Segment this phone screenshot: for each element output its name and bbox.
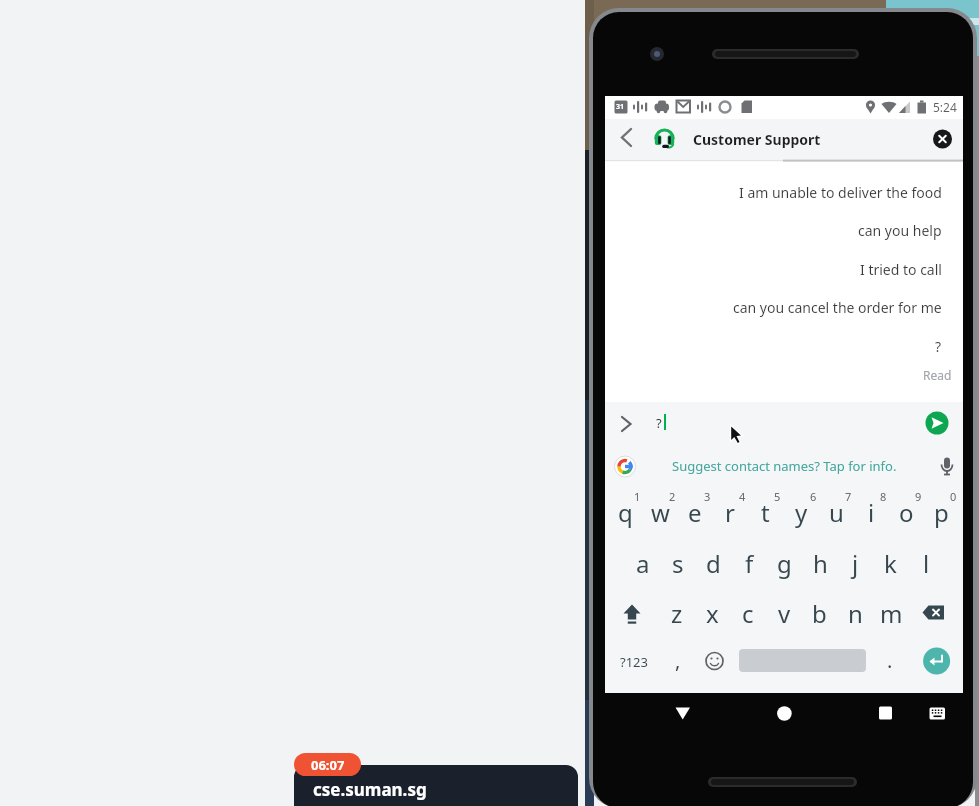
button[interactable]: l xyxy=(909,541,943,585)
staticText: 06:07 xyxy=(311,756,345,774)
staticText: 8 xyxy=(880,489,887,503)
staticText: w xyxy=(651,496,670,529)
staticText: f xyxy=(745,547,754,580)
button[interactable]: n xyxy=(838,591,872,635)
staticText: t xyxy=(761,496,770,529)
button[interactable]: j xyxy=(838,541,872,585)
staticText: I tried to call xyxy=(860,260,942,279)
button[interactable] xyxy=(923,702,951,726)
button[interactable]: h xyxy=(803,541,837,585)
staticText: 5:24 xyxy=(933,99,957,115)
button[interactable]: v xyxy=(767,591,801,635)
button[interactable]: cse.suman.sg xyxy=(294,765,578,806)
staticText: Read xyxy=(923,367,952,383)
staticText: n xyxy=(848,597,863,630)
staticText: m xyxy=(880,597,903,630)
button[interactable]: y xyxy=(784,490,818,534)
staticText: ? xyxy=(935,337,942,356)
button[interactable] xyxy=(930,126,956,152)
staticText: g xyxy=(777,547,792,580)
staticText: r xyxy=(725,496,735,529)
staticText: . xyxy=(887,647,893,674)
staticText: cse.suman.sg xyxy=(313,778,427,800)
button[interactable]: u xyxy=(819,490,853,534)
staticText: ?123 xyxy=(620,653,648,671)
button[interactable]: c xyxy=(731,591,765,635)
button[interactable] xyxy=(923,647,951,675)
button[interactable]: s xyxy=(661,541,695,585)
staticText: 0 xyxy=(950,489,957,503)
staticText: I am unable to deliver the food xyxy=(739,183,942,202)
staticText: o xyxy=(899,496,914,529)
staticText: 2 xyxy=(669,489,676,503)
staticText: p xyxy=(934,496,949,529)
button[interactable]: . xyxy=(880,646,900,674)
button[interactable] xyxy=(616,124,640,154)
staticText: 7 xyxy=(845,489,852,503)
button[interactable]: Suggest contact names? Tap for info. xyxy=(669,456,899,476)
staticText: s xyxy=(672,547,684,580)
staticText: 5 xyxy=(774,489,781,503)
button[interactable]: t xyxy=(748,490,782,534)
button[interactable]: ?123 xyxy=(616,650,652,674)
staticText: can you help xyxy=(858,221,942,240)
button[interactable]: d xyxy=(696,541,730,585)
staticText: can you cancel the order for me xyxy=(733,298,942,317)
button[interactable]: i xyxy=(854,490,888,534)
button[interactable]: b xyxy=(802,591,836,635)
button[interactable]: w xyxy=(643,490,677,534)
staticText: ? xyxy=(656,414,662,432)
staticText: y xyxy=(795,496,808,529)
button[interactable]: x xyxy=(695,591,729,635)
staticText: 4 xyxy=(739,489,746,503)
staticText: , xyxy=(675,647,681,674)
button[interactable] xyxy=(770,700,798,727)
staticText: c xyxy=(742,597,754,630)
button[interactable]: ? xyxy=(656,414,686,432)
staticText: b xyxy=(812,597,827,630)
button[interactable] xyxy=(934,453,960,479)
staticText: u xyxy=(829,496,844,529)
staticText: e xyxy=(688,496,702,529)
staticText: 9 xyxy=(915,489,922,503)
button[interactable]: r xyxy=(713,490,747,534)
staticText: 6 xyxy=(810,489,817,503)
button[interactable]: e xyxy=(678,490,712,534)
button[interactable]: o xyxy=(889,490,923,534)
button[interactable] xyxy=(704,650,725,672)
button[interactable]: q xyxy=(608,490,642,534)
button[interactable]: k xyxy=(873,541,907,585)
staticText: k xyxy=(884,547,897,580)
staticText: Customer Support xyxy=(693,130,821,149)
staticText: d xyxy=(706,547,721,580)
button[interactable] xyxy=(612,453,638,479)
staticText: q xyxy=(618,496,633,529)
button[interactable] xyxy=(668,700,696,727)
button[interactable]: f xyxy=(732,541,766,585)
staticText: i xyxy=(868,496,875,529)
button[interactable] xyxy=(871,700,899,727)
staticText: Suggest contact names? Tap for info. xyxy=(672,457,897,475)
button[interactable]: m xyxy=(874,591,908,635)
staticText: 31 xyxy=(616,102,625,112)
button[interactable] xyxy=(924,410,950,436)
staticText: j xyxy=(852,547,859,580)
staticText: a xyxy=(636,547,650,580)
staticText: v xyxy=(778,597,791,630)
staticText: 3 xyxy=(704,489,711,503)
button[interactable] xyxy=(617,598,647,628)
staticText: h xyxy=(813,547,828,580)
button[interactable] xyxy=(917,598,947,628)
staticText: 1 xyxy=(634,489,641,503)
button[interactable]: a xyxy=(626,541,660,585)
button[interactable]: g xyxy=(767,541,801,585)
staticText: l xyxy=(923,547,930,580)
staticText: z xyxy=(671,597,683,630)
button[interactable]: , xyxy=(668,646,688,674)
staticText: x xyxy=(706,597,719,630)
button[interactable]: z xyxy=(660,591,694,635)
button[interactable] xyxy=(614,410,640,436)
button[interactable]: p xyxy=(924,490,958,534)
